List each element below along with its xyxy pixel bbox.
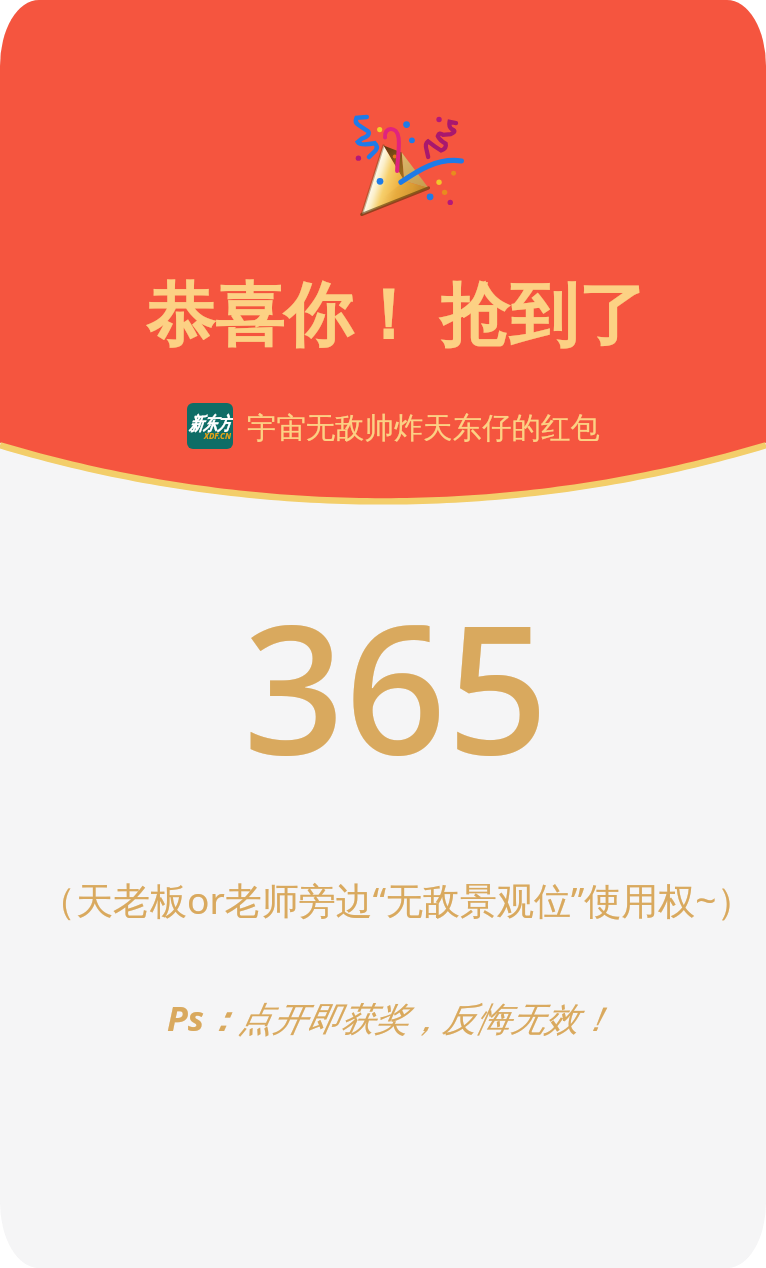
staticText: Ps：点开即获奖，反悔无效！ [167,995,612,1041]
other: Celebration [350,110,462,222]
staticText: 新东方 [189,413,231,437]
staticText: 365 [243,564,549,806]
staticText: （天老板or老师旁边“无敌景观位”使用权~） [39,874,754,925]
button[interactable]: 新东方 [186,405,600,451]
staticText: 恭喜你！ 抢到了 [146,265,647,359]
staticText: 宇宙无敌帅炸天东仔的红包 [247,410,600,447]
staticText: XDF.CN [204,430,231,441]
